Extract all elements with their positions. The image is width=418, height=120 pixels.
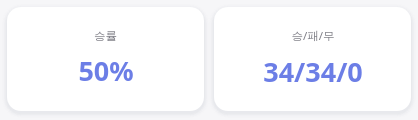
staticText: 승/패/무	[291, 28, 335, 44]
staticText: 승률	[94, 29, 117, 43]
staticText: 34/34/0	[263, 53, 363, 90]
button[interactable]: 승률	[7, 7, 204, 111]
staticText: 50%	[78, 52, 134, 89]
button[interactable]: 승/패/무	[214, 7, 411, 111]
